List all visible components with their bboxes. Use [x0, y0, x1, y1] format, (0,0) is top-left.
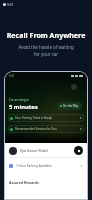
staticText: 5 minutes [9, 103, 38, 111]
staticText: 9:41 [7, 3, 14, 7]
staticText: Your Parking Ticket is Ready [15, 116, 52, 120]
button[interactable]: Kjas Kumar (Valet) [9, 146, 83, 155]
button[interactable]: 1 Hour Parking Available [9, 164, 83, 168]
button[interactable]: Your Parking Ticket is Ready [8, 114, 84, 122]
staticText: On the Way [63, 104, 79, 108]
staticText: Avoid the hassle of waiting for your car [0, 44, 92, 57]
staticText: Assured Rewards [9, 180, 39, 185]
staticText: Recommended Services for You [15, 127, 57, 131]
button[interactable]: On the Way [57, 102, 82, 110]
button[interactable]: Call valet [74, 146, 83, 155]
staticText: Kjas Kumar (Valet) [20, 149, 48, 153]
button[interactable]: Recommended Services for You [8, 125, 84, 133]
staticText: 1 Hour Parking Available [16, 164, 52, 168]
staticText: 9:41 [9, 74, 15, 78]
button[interactable]: Recenter map [71, 84, 77, 90]
staticText: Car arriving in [9, 98, 29, 102]
staticText: Recall From Anywhere [0, 30, 92, 40]
